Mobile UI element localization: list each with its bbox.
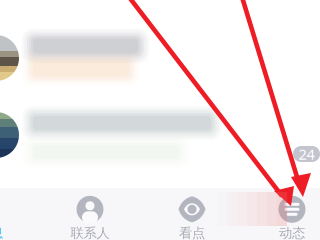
button[interactable]: 看点 — [0, 188, 320, 240]
staticText: 24 — [298, 144, 314, 164]
staticText: 联系人 — [70, 225, 109, 240]
button[interactable]: 联系人 — [0, 188, 320, 240]
button[interactable]: 消息 — [0, 188, 320, 240]
staticText: 动态 — [279, 225, 305, 240]
staticText: 消息 — [0, 225, 3, 240]
button[interactable]: 动态 — [0, 188, 320, 240]
staticText: 看点 — [179, 225, 205, 240]
